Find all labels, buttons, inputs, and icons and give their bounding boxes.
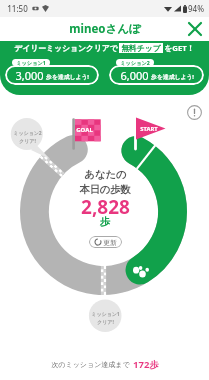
- button[interactable]: 更新: [89, 236, 122, 248]
- staticText: 更新: [103, 238, 117, 247]
- staticText: 歩を達成しよう!: [151, 73, 194, 81]
- staticText: 歩を達成しよう!: [46, 73, 89, 81]
- staticText: ミッション2: [13, 130, 42, 137]
- staticText: 172歩: [133, 358, 159, 371]
- staticText: 3,000: [15, 68, 44, 83]
- button[interactable]: Close: [185, 19, 205, 39]
- staticText: 無料チップ: [121, 43, 161, 53]
- staticText: 本日の歩数: [79, 183, 131, 196]
- staticText: クリア!: [97, 319, 114, 326]
- button[interactable]: デイリーミッションクリアで: [0, 41, 209, 55]
- staticText: クリア!: [19, 138, 36, 145]
- button[interactable]: ミッション2: [11, 130, 43, 145]
- staticText: 次のミッション達成まで: [51, 360, 130, 369]
- button[interactable]: ミッション1: [89, 311, 121, 326]
- staticText: 11:50: [7, 3, 28, 14]
- staticText: 94%: [188, 3, 204, 14]
- staticText: 6,000: [120, 68, 149, 83]
- staticText: mineoさんぽ: [69, 21, 141, 37]
- button[interactable]: 3,000: [5, 65, 99, 85]
- staticText: あなたの: [84, 168, 127, 181]
- staticText: 歩: [100, 215, 110, 228]
- staticText: ミッション1: [16, 59, 46, 66]
- staticText: GOAL: [76, 126, 93, 134]
- staticText: ミッション1: [91, 311, 120, 318]
- button[interactable]: 6,000: [109, 65, 204, 85]
- button[interactable]: Info: [185, 103, 203, 121]
- staticText: をGET！: [164, 43, 195, 54]
- staticText: START: [140, 125, 158, 133]
- staticText: 2,828: [81, 194, 130, 220]
- staticText: デイリーミッションクリアで: [14, 43, 118, 53]
- staticText: ミッション2: [120, 59, 150, 66]
